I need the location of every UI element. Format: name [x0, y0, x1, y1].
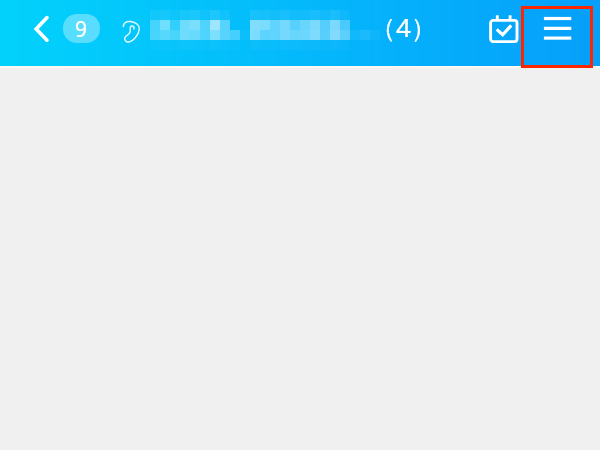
staticText: （4）: [370, 9, 437, 45]
button[interactable]: 9: [63, 14, 100, 43]
button[interactable]: Listen: [121, 19, 141, 44]
staticText: 9: [75, 15, 88, 43]
button[interactable]: Schedule: [486, 13, 518, 45]
button[interactable]: Back: [24, 10, 58, 56]
button[interactable]: Menu: [521, 6, 593, 66]
